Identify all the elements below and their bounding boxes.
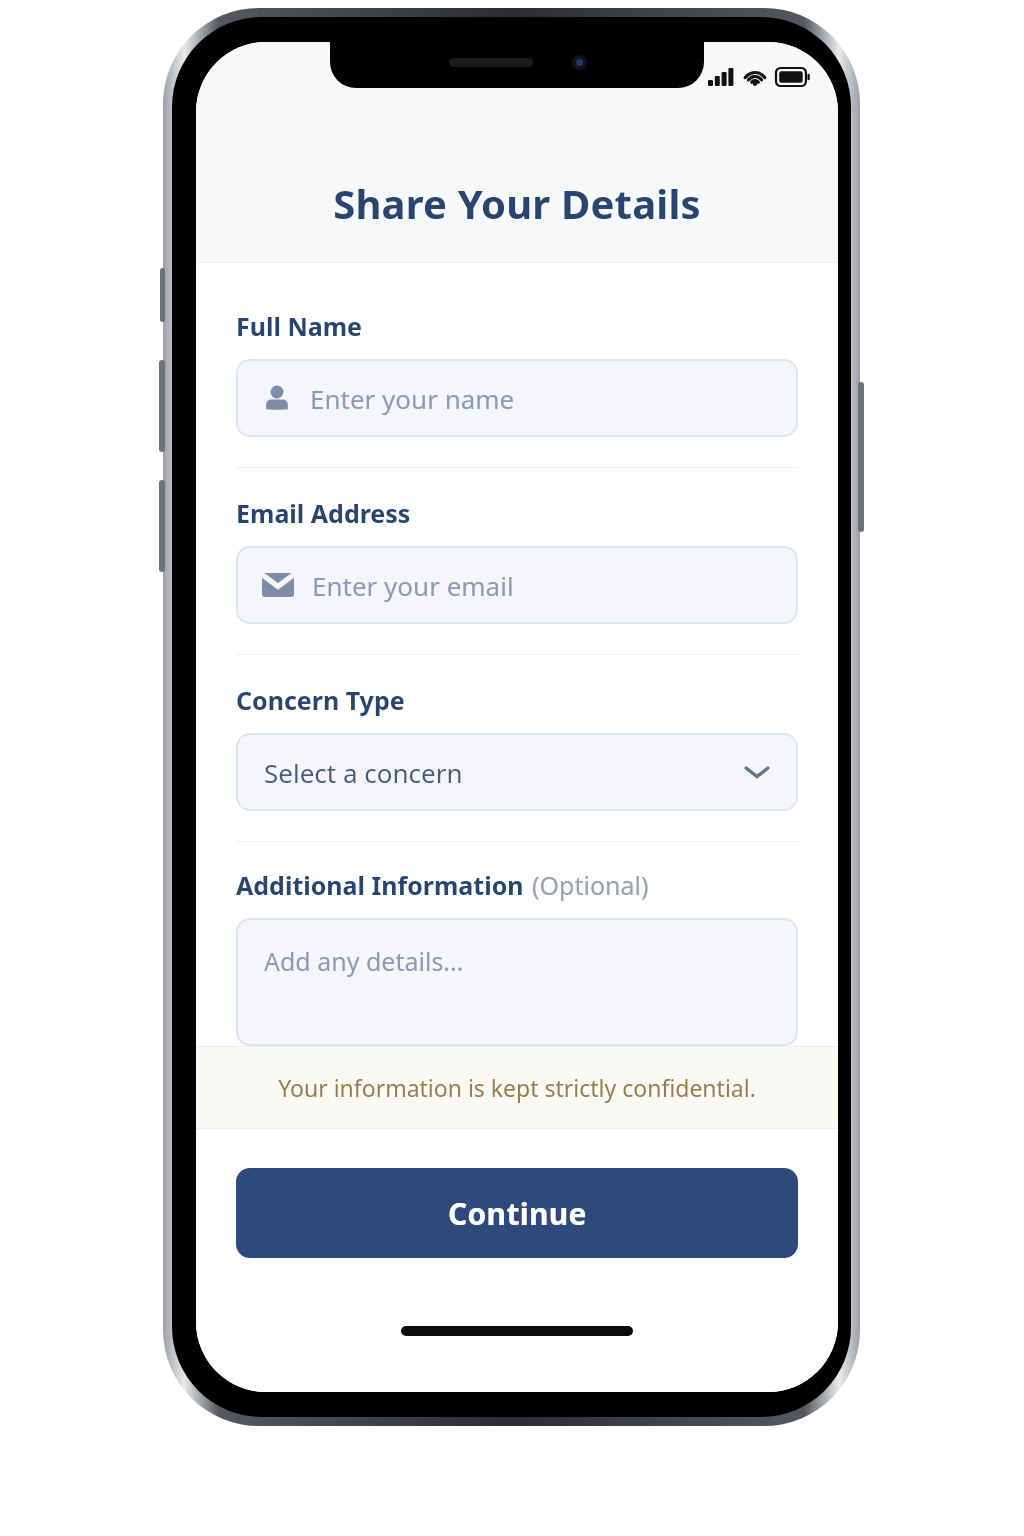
staticText: Enter your email bbox=[312, 568, 514, 603]
staticText: Your information is kept strictly confid… bbox=[278, 1072, 756, 1103]
staticText: Add any details... bbox=[264, 944, 464, 978]
button[interactable]: Email address input bbox=[236, 546, 798, 624]
staticText: Concern Type bbox=[236, 683, 405, 717]
staticText: Continue bbox=[448, 1193, 587, 1234]
staticText: Additional Information bbox=[236, 868, 524, 902]
button[interactable]: Add any details... bbox=[236, 918, 798, 1046]
staticText: Email Address bbox=[236, 496, 411, 530]
staticText: Share Your Details bbox=[333, 176, 701, 230]
staticText: Enter your name bbox=[310, 381, 515, 416]
button[interactable]: Continue bbox=[236, 1168, 798, 1258]
staticText: (Optional) bbox=[532, 868, 649, 902]
other: Open concern list bbox=[744, 764, 770, 780]
staticText: Full Name bbox=[236, 309, 362, 343]
staticText: Select a concern bbox=[264, 755, 744, 790]
button[interactable]: Select a concern bbox=[236, 733, 798, 811]
button[interactable]: Full name input bbox=[236, 359, 798, 437]
